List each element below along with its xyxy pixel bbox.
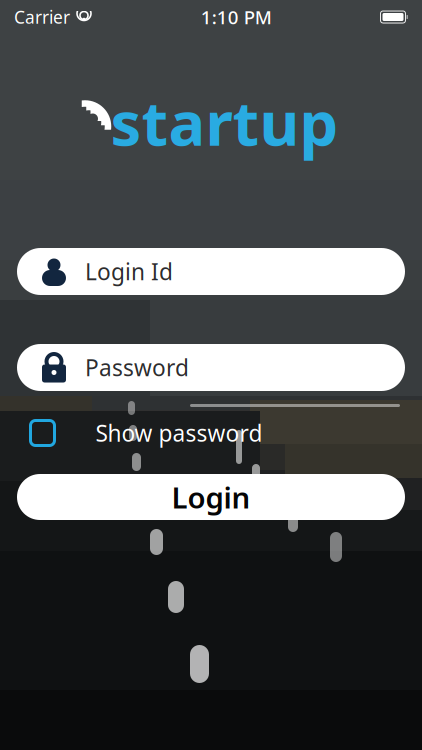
staticText: Carrier <box>14 5 70 28</box>
button[interactable]: Login Id <box>17 248 405 295</box>
staticText: Show password <box>95 418 262 448</box>
button[interactable]: Show password <box>3 416 418 450</box>
staticText: 1:10 PM <box>201 5 272 29</box>
button[interactable]: Login <box>17 474 405 520</box>
button[interactable]: Password <box>17 344 405 391</box>
staticText: Login Id <box>85 256 173 286</box>
staticText: Password <box>85 352 189 382</box>
staticText: startup <box>110 81 338 163</box>
staticText: Login <box>171 477 250 516</box>
